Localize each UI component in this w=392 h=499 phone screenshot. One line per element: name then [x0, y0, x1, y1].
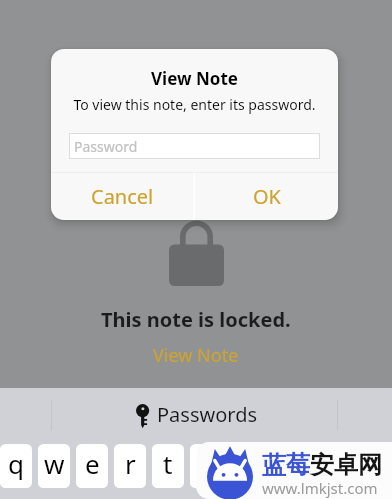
button[interactable]: w	[38, 444, 70, 488]
staticText: u	[236, 446, 253, 481]
staticText: 蓝莓	[262, 450, 310, 480]
staticText: This note is locked.	[101, 306, 291, 333]
staticText: r	[125, 446, 136, 481]
staticText: w	[44, 446, 65, 481]
staticText: Password	[74, 137, 138, 156]
staticText: q	[8, 446, 24, 481]
staticText: Cancel	[91, 183, 154, 210]
button[interactable]: p	[342, 444, 374, 488]
button[interactable]: View Note	[153, 343, 239, 368]
staticText: e	[85, 446, 100, 481]
button[interactable]: y	[190, 444, 222, 488]
staticText: www.lmkjst.com	[262, 478, 378, 498]
other: Passwords	[136, 404, 150, 430]
button[interactable]: r	[114, 444, 146, 488]
staticText: t	[163, 446, 173, 481]
staticText: p	[350, 446, 366, 481]
staticText: Passwords	[157, 401, 258, 428]
button[interactable]: i	[266, 444, 298, 488]
staticText: o	[312, 446, 328, 481]
staticText: View Note	[153, 343, 239, 368]
button[interactable]: t	[152, 444, 184, 488]
button[interactable]: u	[228, 444, 260, 488]
staticText: To view this note, enter its password.	[51, 95, 338, 114]
button[interactable]: OK	[195, 173, 338, 220]
button[interactable]: Cancel	[51, 173, 193, 220]
button[interactable]: o	[304, 444, 336, 488]
staticText: View Note	[51, 67, 338, 90]
button[interactable]: e	[76, 444, 108, 488]
staticText: y	[199, 446, 213, 481]
button[interactable]: q	[0, 444, 32, 488]
staticText: 安卓网	[310, 450, 382, 480]
staticText: OK	[253, 183, 281, 210]
button[interactable]: Passwords	[135, 401, 258, 428]
staticText: i	[279, 446, 286, 481]
